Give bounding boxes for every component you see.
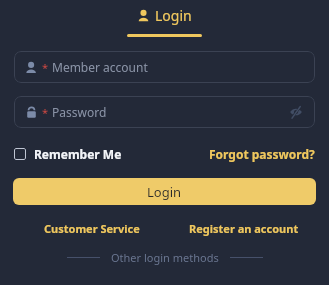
staticText: Login <box>147 183 182 201</box>
button[interactable]: Forgot password? <box>209 144 315 164</box>
staticText: * <box>42 105 49 120</box>
staticText: Customer Service <box>44 221 140 236</box>
staticText: Member account <box>52 59 148 75</box>
button[interactable]: * <box>14 96 315 128</box>
button[interactable]: Login <box>13 178 316 205</box>
button[interactable]: Remember Me <box>14 144 122 164</box>
button[interactable]: * <box>14 51 315 83</box>
staticText: Login <box>155 6 192 25</box>
button[interactable]: Show password <box>287 103 305 121</box>
staticText: Password <box>52 104 107 120</box>
button[interactable]: Customer Service <box>44 219 140 238</box>
staticText: Other login methods <box>111 250 219 265</box>
staticText: Remember Me <box>34 146 122 162</box>
button[interactable]: Register an account <box>189 219 299 238</box>
staticText: Register an account <box>189 221 299 236</box>
staticText: * <box>42 60 49 75</box>
staticText: Forgot password? <box>209 146 315 162</box>
button[interactable]: Login <box>131 4 198 27</box>
